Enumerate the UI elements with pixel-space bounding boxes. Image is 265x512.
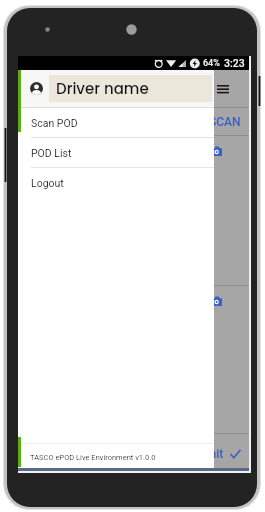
- other: Take photo: [212, 146, 222, 156]
- staticText: 3:23: [224, 57, 245, 69]
- button[interactable]: Take photo: [18, 286, 249, 315]
- staticText: SCAN: [209, 115, 241, 129]
- staticText: Scan POD: [31, 117, 78, 129]
- button[interactable]: POD List: [18, 138, 214, 167]
- staticText: Driver name: [56, 78, 149, 99]
- button[interactable]: Logout: [18, 168, 214, 197]
- button[interactable]: Take photo: [18, 136, 249, 165]
- staticText: Submit: [185, 447, 224, 461]
- button[interactable]: SCAN: [18, 108, 249, 135]
- staticText: Logout: [31, 177, 64, 189]
- staticText: 64%: [203, 58, 220, 69]
- button[interactable]: Open navigation menu: [212, 78, 234, 100]
- button[interactable]: Driver name: [18, 70, 214, 107]
- button[interactable]: Submit: [18, 434, 249, 468]
- staticText: TASCO ePOD Live Environment v1.0.0: [30, 453, 156, 462]
- staticText: POD List: [31, 147, 72, 159]
- button[interactable]: Scan POD: [18, 108, 214, 137]
- other: Take photo: [212, 296, 222, 306]
